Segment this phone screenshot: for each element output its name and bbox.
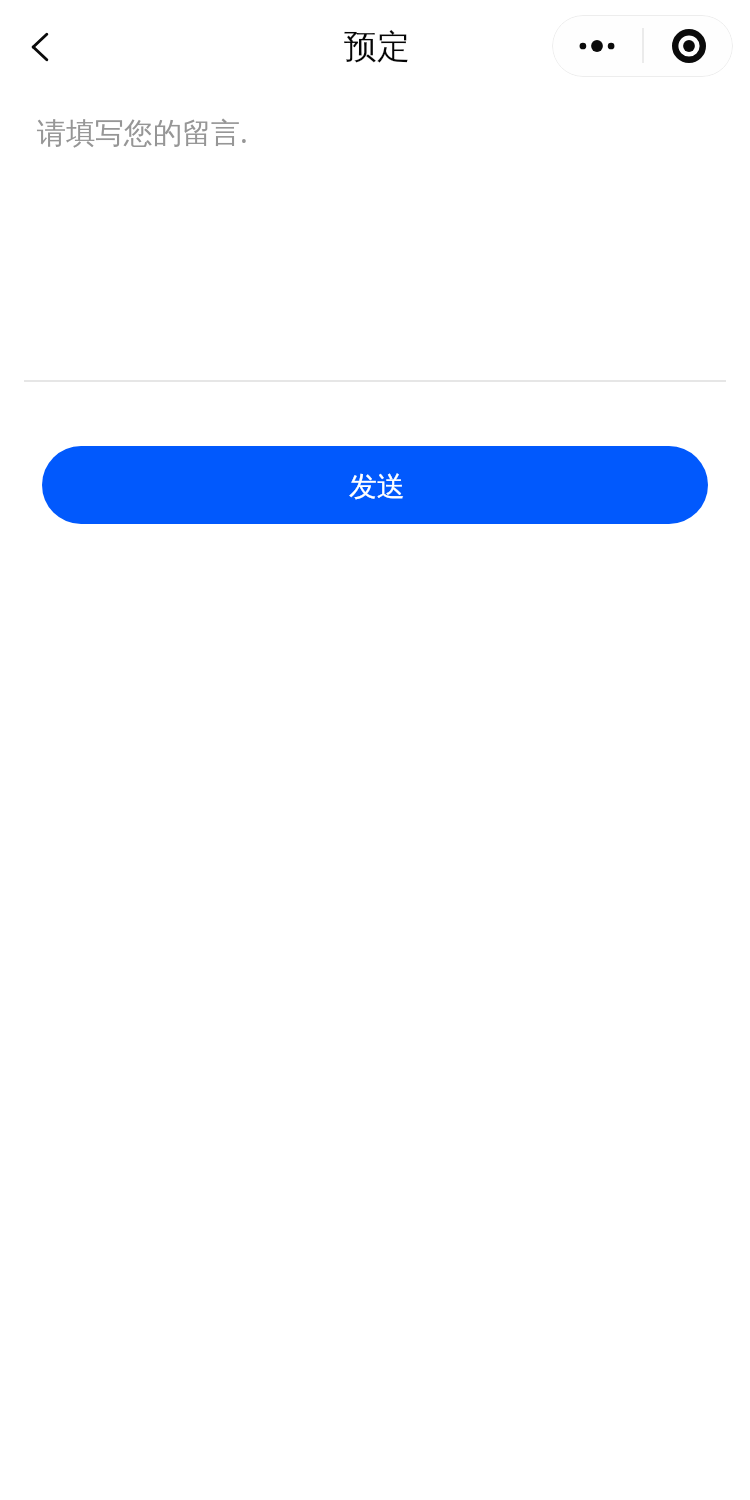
staticText: 请填写您的留言. [37, 112, 248, 152]
button[interactable]: 请填写您的留言. [0, 92, 750, 380]
staticText: 预定 [344, 26, 410, 68]
button[interactable]: 发送 [42, 446, 708, 524]
button[interactable]: Back [8, 15, 72, 79]
button[interactable]: Close mini program [644, 15, 733, 77]
button[interactable]: More options [552, 15, 642, 77]
staticText: 发送 [349, 469, 405, 504]
